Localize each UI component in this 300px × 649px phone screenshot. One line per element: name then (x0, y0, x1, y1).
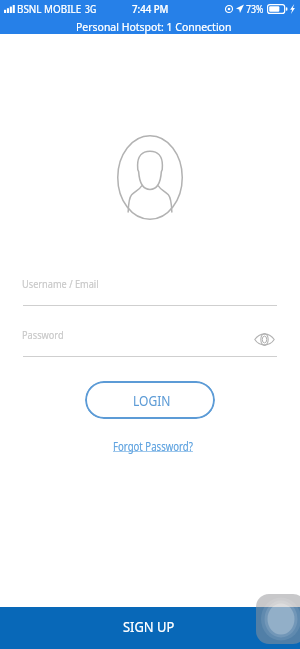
button[interactable]: Assistive Touch (256, 594, 300, 644)
staticText: 73% (246, 2, 264, 16)
staticText: Forgot Password? (113, 438, 193, 454)
button[interactable]: SIGN UP (0, 607, 300, 649)
staticText: Password (22, 327, 64, 343)
staticText: 3G (85, 2, 96, 16)
staticText: Username / Email (22, 276, 99, 292)
staticText: Personal Hotspot: 1 Connection (76, 19, 232, 35)
button[interactable]: Show password (250, 325, 278, 353)
staticText: BSNL MOBILE (17, 2, 82, 16)
button[interactable]: Forgot Password? (113, 438, 213, 454)
staticText: 7:44 PM (132, 2, 169, 16)
button[interactable]: LOGIN (85, 381, 215, 419)
staticText: SIGN UP (123, 616, 175, 636)
staticText: LOGIN (133, 391, 171, 410)
